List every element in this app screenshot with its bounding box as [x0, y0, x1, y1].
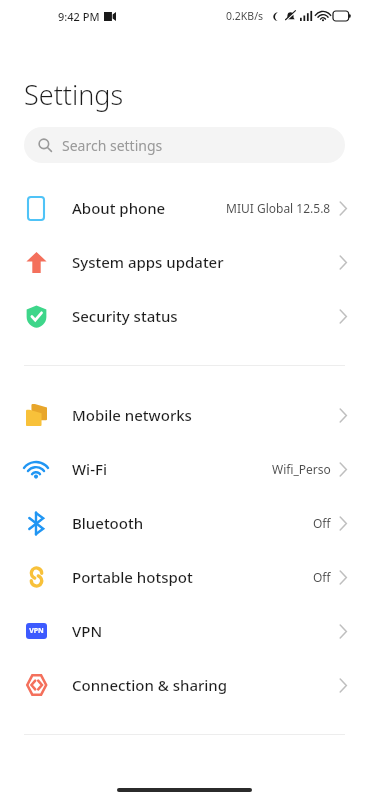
- staticText: Off: [313, 515, 331, 531]
- staticText: About phone: [72, 198, 166, 218]
- button[interactable]: Portable hotspot: [0, 550, 369, 604]
- staticText: Search settings: [62, 136, 163, 155]
- staticText: Wi-Fi: [72, 459, 107, 479]
- button[interactable]: Wi-Fi: [0, 442, 369, 496]
- staticText: 0.2KB/s: [226, 9, 264, 23]
- staticText: VPN: [72, 621, 103, 641]
- staticText: Bluetooth: [72, 513, 144, 533]
- staticText: Portable hotspot: [72, 567, 193, 587]
- button[interactable]: About phone: [0, 181, 369, 235]
- staticText: Off: [313, 569, 331, 585]
- button[interactable]: System apps updater: [0, 235, 369, 289]
- button[interactable]: Connection & sharing: [0, 658, 369, 712]
- staticText: VPN: [29, 626, 44, 636]
- staticText: Settings: [24, 76, 124, 113]
- button[interactable]: Security status: [0, 289, 369, 343]
- button[interactable]: Search settings: [24, 127, 345, 163]
- button[interactable]: VPN: [0, 604, 369, 658]
- staticText: 9:42 PM: [58, 9, 100, 24]
- staticText: Security status: [72, 306, 178, 326]
- staticText: System apps updater: [72, 252, 224, 272]
- staticText: MIUI Global 12.5.8: [226, 200, 331, 216]
- staticText: Wifi_Perso: [272, 461, 331, 477]
- staticText: Connection & sharing: [72, 675, 228, 695]
- button[interactable]: Mobile networks: [0, 388, 369, 442]
- staticText: Mobile networks: [72, 405, 192, 425]
- button[interactable]: Bluetooth: [0, 496, 369, 550]
